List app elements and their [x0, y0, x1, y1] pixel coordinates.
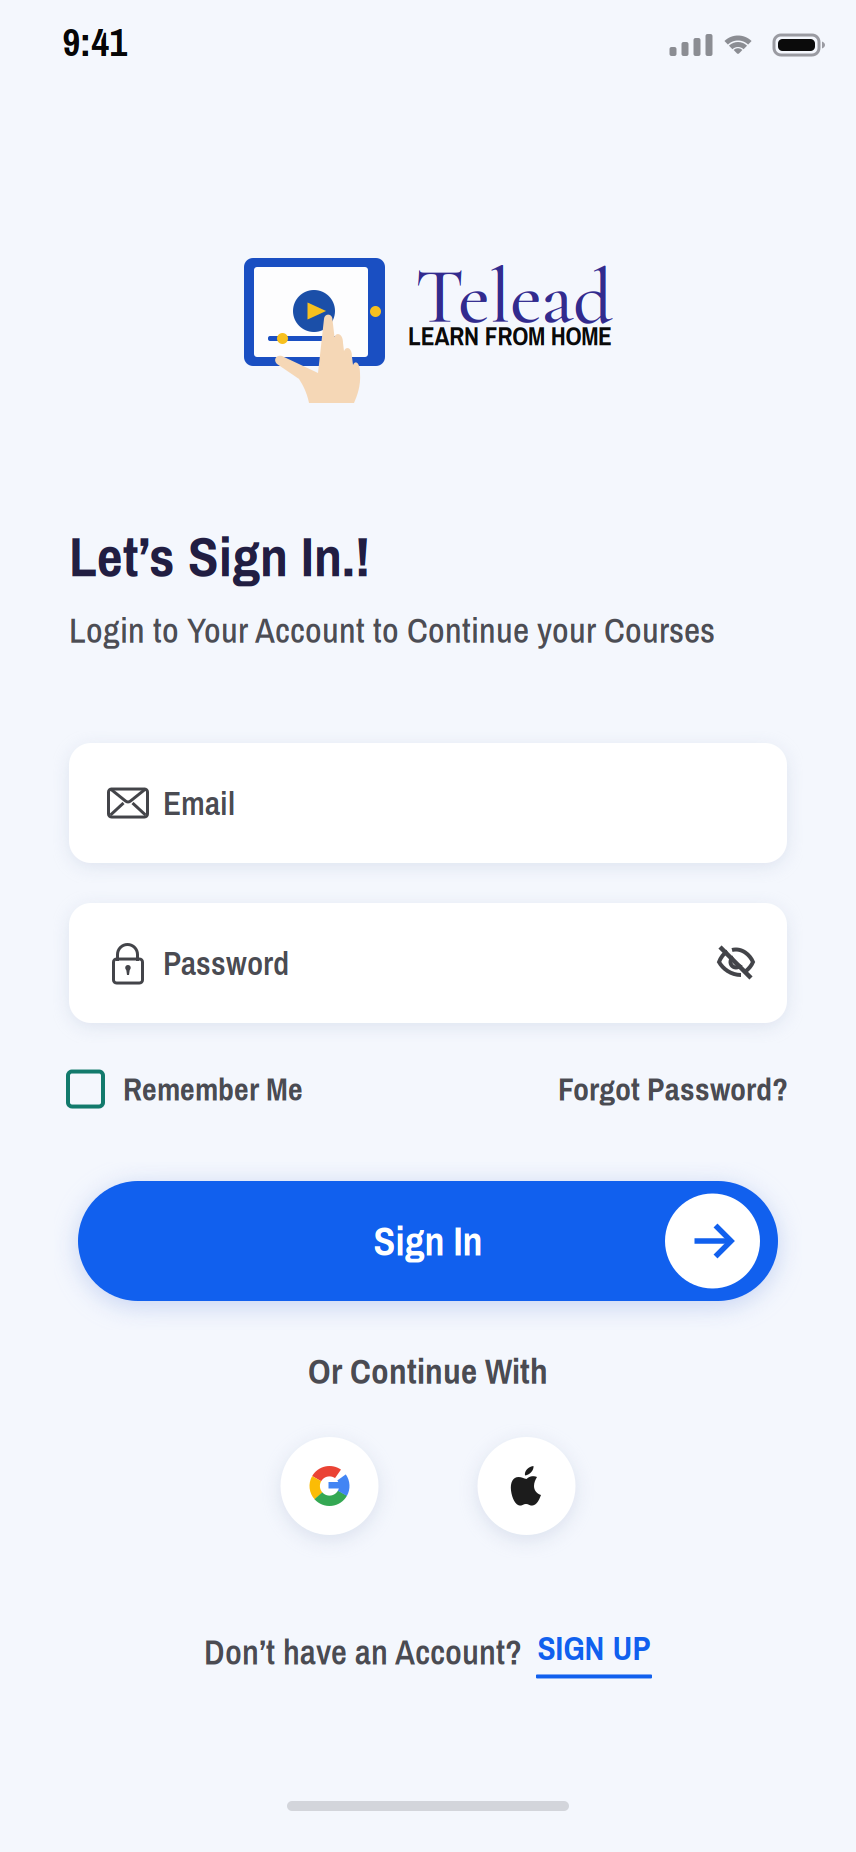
- button[interactable]: SIGN UP: [536, 1626, 652, 1678]
- staticText: Password: [163, 941, 289, 985]
- button[interactable]: Sign in with Apple: [477, 1437, 575, 1535]
- staticText: Let’s Sign In.!: [69, 518, 370, 594]
- staticText: Telead: [415, 250, 613, 344]
- staticText: LEARN FROM HOME: [408, 319, 612, 353]
- staticText: SIGN UP: [537, 1626, 650, 1670]
- button[interactable]: Email: [69, 743, 787, 863]
- staticText: Login to Your Account to Continue your C…: [69, 606, 715, 654]
- button[interactable]: Sign In: [78, 1181, 778, 1301]
- button[interactable]: Remember Me: [68, 1067, 303, 1110]
- button[interactable]: Sign in with Google: [280, 1437, 378, 1535]
- staticText: Or Continue With: [308, 1347, 548, 1395]
- staticText: Sign In: [373, 1214, 482, 1268]
- button[interactable]: Password: [69, 903, 787, 1023]
- button[interactable]: Forgot Password?: [558, 1067, 788, 1110]
- staticText: Remember Me: [123, 1067, 303, 1110]
- staticText: Don’t have an Account?: [204, 1629, 522, 1675]
- staticText: Forgot Password?: [558, 1067, 788, 1110]
- staticText: 9:41: [62, 16, 127, 68]
- staticText: Email: [163, 781, 235, 825]
